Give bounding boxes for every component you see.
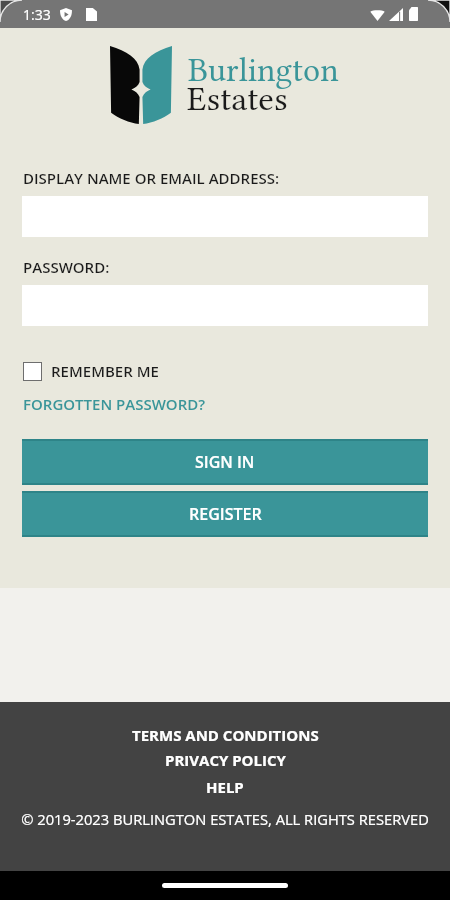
button[interactable]: FORGOTTEN PASSWORD? (23, 394, 206, 414)
staticText: SIGN IN (195, 451, 255, 473)
button[interactable]: REMEMBER ME (23, 361, 159, 381)
staticText: PASSWORD: (23, 257, 110, 277)
button[interactable]: HELP (206, 777, 244, 797)
button[interactable]: PRIVACY POLICY (165, 750, 286, 770)
button[interactable]: SIGN IN (22, 439, 428, 485)
staticText: © 2019-2023 BURLINGTON ESTATES, ALL RIGH… (21, 809, 429, 829)
staticText: 1:33 (23, 5, 51, 24)
staticText: REMEMBER ME (51, 361, 159, 381)
button[interactable]: REGISTER (22, 491, 428, 537)
other: Home (162, 883, 288, 888)
staticText: Burlington (188, 51, 339, 90)
button[interactable]: TERMS AND CONDITIONS (132, 725, 319, 745)
staticText: DISPLAY NAME OR EMAIL ADDRESS: (23, 168, 280, 188)
staticText: Estates (187, 79, 288, 119)
staticText: REGISTER (189, 503, 262, 525)
